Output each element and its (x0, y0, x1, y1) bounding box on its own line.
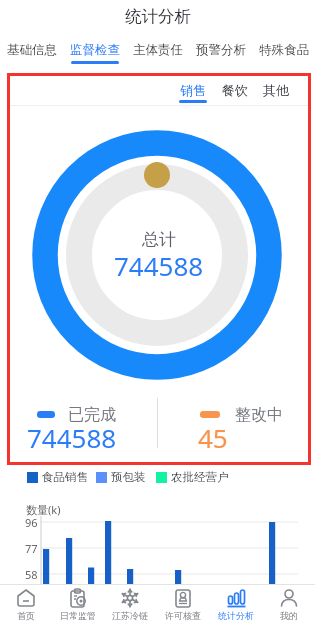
staticText: 744588 (27, 420, 117, 455)
staticText: 监督检查 (70, 42, 120, 58)
staticText: 统计分析 (218, 610, 254, 621)
button[interactable]: 首页 (0, 585, 52, 621)
staticText: 首页 (17, 610, 35, 621)
button[interactable]: 我的 (262, 585, 315, 621)
staticText: 特殊食品 (259, 42, 309, 58)
staticText: 主体责任 (133, 42, 183, 58)
staticText: 统计分析 (125, 6, 191, 27)
button[interactable]: 统计分析 (209, 585, 262, 621)
button[interactable]: 监督检查 (63, 42, 126, 64)
staticText: 食品销售 (42, 470, 88, 484)
staticText: 数量(k) (26, 502, 61, 517)
staticText: 销售 (180, 82, 206, 98)
staticText: 农批经营户 (171, 470, 229, 484)
button[interactable]: 基础信息 (0, 42, 63, 61)
button[interactable]: 预包装 (96, 470, 146, 484)
button[interactable]: 主体责任 (126, 42, 189, 61)
staticText: 预警分析 (196, 42, 246, 58)
button[interactable]: 日常监管 (52, 585, 104, 621)
button[interactable] (158, 398, 308, 453)
staticText: 我的 (280, 610, 298, 621)
button[interactable]: 预警分析 (189, 42, 252, 61)
button[interactable]: 特殊食品 (252, 42, 315, 61)
staticText: 总计 (142, 229, 176, 250)
staticText: 58 (25, 567, 38, 582)
button[interactable]: 其他 (263, 82, 289, 98)
button[interactable]: 销售 (179, 82, 207, 103)
staticText: 96 (25, 515, 38, 530)
button[interactable]: 餐饮 (222, 82, 248, 98)
button[interactable]: 农批经营户 (156, 470, 229, 484)
staticText: 预包装 (111, 470, 146, 484)
button[interactable] (7, 398, 157, 453)
button[interactable]: 食品销售 (27, 470, 88, 484)
staticText: 744588 (114, 248, 204, 283)
staticText: 江苏冷链 (112, 610, 148, 621)
staticText: 45 (198, 420, 228, 455)
button[interactable]: 江苏冷链 (104, 585, 156, 621)
staticText: 许可核查 (165, 610, 201, 621)
button[interactable]: 许可核查 (156, 585, 209, 621)
staticText: 整改中 (235, 405, 283, 425)
staticText: 已完成 (68, 405, 116, 425)
staticText: 77 (25, 541, 38, 556)
staticText: 基础信息 (7, 42, 57, 58)
staticText: 日常监管 (60, 610, 96, 621)
